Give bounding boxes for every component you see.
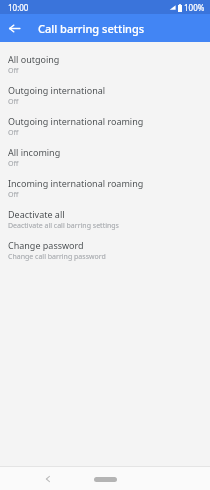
- button[interactable]: Outgoing international roaming: [0, 111, 210, 142]
- staticText: Deactivate all call barring settings: [8, 221, 119, 231]
- staticText: Incoming international roaming: [8, 177, 144, 189]
- staticText: 10:00: [8, 2, 29, 13]
- button[interactable]: Deactivate all: [0, 204, 210, 235]
- button[interactable]: Outgoing international: [0, 80, 210, 111]
- staticText: 100%: [184, 2, 205, 13]
- staticText: Off: [8, 66, 19, 76]
- staticText: Off: [8, 97, 19, 107]
- button[interactable]: Change password: [0, 235, 210, 266]
- button[interactable]: Back: [0, 14, 28, 42]
- staticText: Deactivate all: [8, 208, 65, 220]
- staticText: Change password: [8, 239, 84, 251]
- staticText: Off: [8, 190, 19, 200]
- staticText: Off: [8, 128, 19, 138]
- staticText: Change call barring password: [8, 252, 106, 262]
- staticText: All outgoing: [8, 53, 60, 65]
- button[interactable]: Home: [85, 471, 125, 487]
- button[interactable]: Incoming international roaming: [0, 173, 210, 204]
- button[interactable]: All outgoing: [0, 49, 210, 80]
- staticText: All incoming: [8, 146, 61, 158]
- staticText: Outgoing international roaming: [8, 115, 144, 127]
- button[interactable]: Back: [38, 469, 58, 489]
- button[interactable]: All incoming: [0, 142, 210, 173]
- staticText: Off: [8, 159, 19, 169]
- staticText: Outgoing international: [8, 84, 106, 96]
- staticText: Call barring settings: [38, 21, 145, 36]
